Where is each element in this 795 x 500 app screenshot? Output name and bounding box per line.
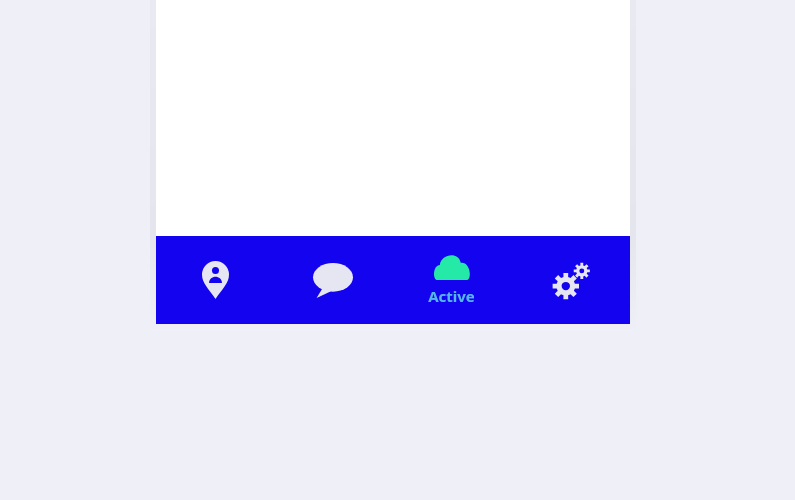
- button[interactable]: Settings: [511, 236, 630, 324]
- staticText: Active: [428, 286, 475, 306]
- button[interactable]: Location: [156, 236, 274, 324]
- button[interactable]: Active: [392, 236, 511, 324]
- button[interactable]: Messages: [274, 236, 392, 324]
